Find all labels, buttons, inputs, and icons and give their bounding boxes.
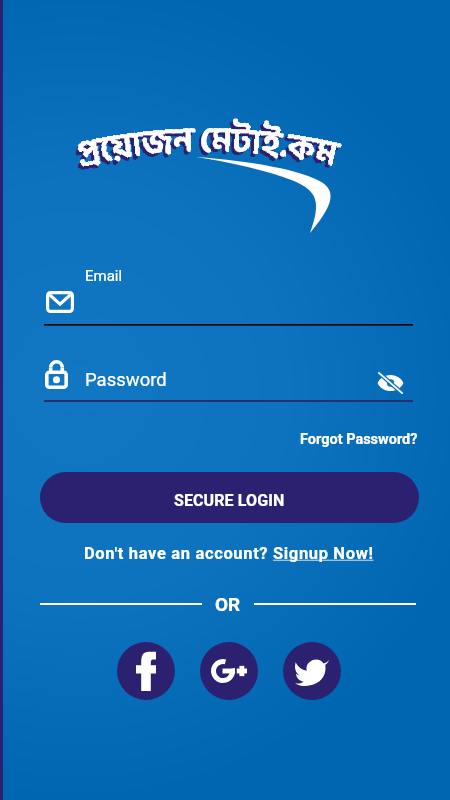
staticText: Don't have an account? (84, 544, 273, 563)
button[interactable]: Signup Now! (273, 544, 374, 563)
staticText: Forgot Password? (300, 431, 418, 448)
button[interactable]: SECURE LOGIN (40, 472, 419, 523)
staticText: OR (215, 593, 241, 615)
button[interactable]: Show password (377, 372, 404, 394)
button[interactable]: Sign in with Google (200, 642, 258, 700)
staticText: Signup Now! (273, 544, 374, 563)
button[interactable]: Sign in with Facebook (117, 642, 175, 700)
staticText: Email (85, 267, 123, 285)
button[interactable]: Sign in with Twitter (283, 642, 341, 700)
button[interactable]: Forgot Password? (296, 427, 422, 452)
staticText: Password (85, 369, 167, 391)
button[interactable]: Password (85, 369, 167, 391)
staticText: SECURE LOGIN (174, 491, 285, 510)
